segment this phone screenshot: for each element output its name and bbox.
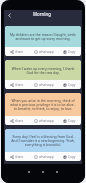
button[interactable]: whatsapp: [32, 117, 56, 124]
staticText: share: [15, 155, 24, 159]
button[interactable]: share: [8, 81, 26, 88]
staticText: whatsapp: [39, 83, 54, 87]
staticText: whatsapp: [39, 119, 54, 123]
button[interactable]: share: [8, 153, 26, 160]
button[interactable]: share: [8, 117, 26, 124]
button[interactable]: Copy: [61, 81, 78, 88]
button[interactable]: When you arise in the morning, think of …: [5, 93, 81, 125]
button[interactable]: whatsapp: [32, 48, 56, 55]
button[interactable]: Navigation: [27, 170, 31, 174]
button[interactable]: whatsapp: [32, 153, 56, 160]
staticText: share: [15, 50, 24, 54]
button[interactable]: Back: [4, 10, 15, 21]
button[interactable]: Copy: [61, 153, 78, 160]
button[interactable]: whatsapp: [32, 81, 56, 88]
staticText: share: [15, 119, 24, 123]
staticText: share: [15, 83, 24, 87]
button[interactable]: Copy: [61, 48, 78, 55]
staticText: When I wake up every morning, I thank Go…: [10, 66, 76, 75]
button[interactable]: Navigation: [55, 170, 59, 174]
staticText: Copy: [68, 119, 76, 123]
staticText: Copy: [68, 50, 76, 54]
button[interactable]: My children are the reason I laught, smi…: [5, 26, 81, 56]
button[interactable]: Every day I feel is a blessing from God.…: [5, 129, 81, 161]
staticText: Copy: [68, 155, 76, 159]
staticText: whatsapp: [39, 155, 54, 159]
staticText: Every day I feel is a blessing from God.…: [10, 134, 76, 147]
staticText: My children are the reason I laught, smi…: [10, 32, 76, 41]
staticText: whatsapp: [39, 50, 54, 54]
staticText: When you arise in the morning, think of …: [10, 98, 76, 111]
staticText: Copy: [68, 83, 76, 87]
button[interactable]: When I wake up every morning, I thank Go…: [5, 60, 81, 89]
button[interactable]: share: [8, 48, 26, 55]
button[interactable]: Copy: [61, 117, 78, 124]
staticText: Morning: [33, 11, 51, 17]
button[interactable]: Navigation: [41, 170, 45, 174]
